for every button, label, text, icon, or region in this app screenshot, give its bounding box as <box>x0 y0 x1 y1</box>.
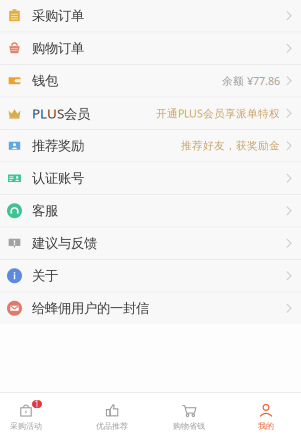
staticText: 认证账号 <box>32 170 84 186</box>
staticText: 1 <box>34 399 39 409</box>
button[interactable]: 推荐奖励 <box>0 130 301 162</box>
staticText: 关于 <box>32 268 58 284</box>
staticText: 客服 <box>32 203 58 219</box>
staticText: 推荐好友，获奖励金 <box>181 139 280 152</box>
staticText: 采购活动 <box>10 421 42 431</box>
button[interactable]: 1 <box>0 401 52 431</box>
button[interactable]: 我的 <box>227 401 301 431</box>
button[interactable]: 关于 <box>0 260 301 292</box>
staticText: 推荐奖励 <box>32 138 84 154</box>
staticText: 优品推荐 <box>96 421 128 431</box>
staticText: 购物省钱 <box>173 421 205 431</box>
button[interactable]: 优品推荐 <box>73 401 150 431</box>
staticText: 余额 ¥77.86 <box>222 74 280 88</box>
button[interactable]: 钱包 <box>0 65 301 97</box>
staticText: 采购订单 <box>32 8 84 24</box>
button[interactable]: 购物省钱 <box>150 401 227 431</box>
staticText: 我的 <box>258 421 274 431</box>
button[interactable]: 客服 <box>0 195 301 227</box>
button[interactable]: 购物订单 <box>0 32 301 65</box>
button[interactable]: 采购订单 <box>0 0 301 32</box>
staticText: 钱包 <box>32 73 58 89</box>
staticText: 开通PLUS会员享派单特权 <box>156 106 280 120</box>
staticText: 购物订单 <box>32 40 84 56</box>
staticText: PLUS会员 <box>32 104 90 122</box>
staticText: 建议与反馈 <box>32 235 97 251</box>
button[interactable]: 认证账号 <box>0 162 301 195</box>
button[interactable]: 给蜂佣用户的一封信 <box>0 292 301 324</box>
button[interactable]: 建议与反馈 <box>0 227 301 260</box>
button[interactable]: PLUS会员 <box>0 97 301 130</box>
staticText: 给蜂佣用户的一封信 <box>32 300 149 316</box>
